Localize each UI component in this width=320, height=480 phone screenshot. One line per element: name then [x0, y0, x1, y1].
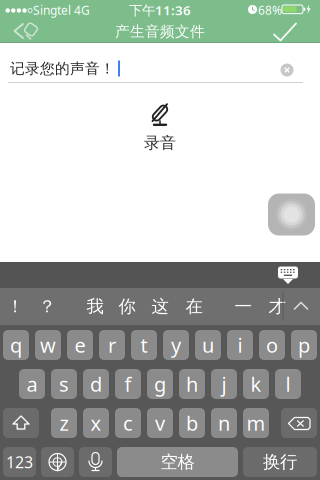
staticText: ！: [6, 296, 23, 317]
staticText: 4G: [74, 2, 90, 18]
button[interactable]: 收起键盘: [271, 263, 305, 287]
staticText: 123: [6, 451, 33, 473]
staticText: w: [40, 332, 56, 358]
button[interactable]: i: [227, 330, 253, 360]
staticText: Singtel: [33, 2, 71, 18]
staticText: o: [266, 332, 278, 358]
button[interactable]: ？: [32, 291, 62, 321]
staticText: 一: [234, 296, 251, 317]
button[interactable]: 空格: [117, 447, 238, 477]
staticText: a: [26, 371, 37, 397]
button[interactable]: n: [211, 408, 237, 438]
button[interactable]: 录音: [130, 98, 190, 150]
button[interactable]: y: [163, 330, 189, 360]
button[interactable]: u: [195, 330, 221, 360]
button[interactable]: o: [259, 330, 285, 360]
staticText: 空格: [160, 451, 194, 473]
button[interactable]: ！: [0, 291, 30, 321]
button[interactable]: b: [179, 408, 205, 438]
staticText: t: [140, 332, 147, 358]
staticText: b: [186, 410, 198, 436]
button[interactable]: 辅助触控: [268, 193, 315, 235]
button[interactable]: 返回: [4, 17, 48, 47]
button[interactable]: 一: [228, 291, 258, 321]
button[interactable]: 在: [179, 291, 209, 321]
staticText: 在: [185, 296, 202, 317]
staticText: n: [218, 410, 230, 436]
button[interactable]: d: [83, 369, 109, 399]
staticText: e: [74, 332, 85, 358]
staticText: d: [90, 371, 102, 397]
button[interactable]: 清除文本: [280, 63, 293, 76]
staticText: 你: [118, 296, 135, 317]
button[interactable]: s: [51, 369, 77, 399]
button[interactable]: c: [115, 408, 141, 438]
staticText: 这: [151, 296, 168, 317]
button[interactable]: p: [291, 330, 317, 360]
button[interactable]: 123: [3, 447, 36, 477]
button[interactable]: 展开候选词: [291, 299, 310, 313]
staticText: f: [124, 371, 131, 397]
staticText: 录音: [144, 133, 176, 153]
button[interactable]: t: [131, 330, 157, 360]
button[interactable]: 听写: [79, 447, 112, 477]
staticText: 下午11:36: [129, 1, 191, 19]
button[interactable]: g: [147, 369, 173, 399]
button[interactable]: w: [35, 330, 61, 360]
button[interactable]: r: [99, 330, 125, 360]
staticText: u: [202, 332, 214, 358]
button[interactable]: 切换输入法: [41, 447, 74, 477]
button[interactable]: x: [83, 408, 109, 438]
staticText: h: [186, 371, 198, 397]
button[interactable]: q: [3, 330, 29, 360]
button[interactable]: j: [211, 369, 237, 399]
button[interactable]: Shift: [3, 408, 39, 438]
button[interactable]: 才: [262, 291, 292, 321]
button[interactable]: m: [243, 408, 269, 438]
staticText: i: [237, 332, 242, 358]
staticText: 换行: [263, 451, 297, 473]
staticText: 我: [86, 296, 103, 317]
button[interactable]: e: [67, 330, 93, 360]
staticText: 才: [268, 296, 285, 317]
button[interactable]: f: [115, 369, 141, 399]
staticText: z: [59, 410, 68, 436]
staticText: p: [298, 332, 310, 358]
staticText: 记录您的声音！: [10, 59, 115, 77]
button[interactable]: 这: [145, 291, 175, 321]
staticText: j: [221, 371, 226, 397]
staticText: 68%: [258, 2, 282, 18]
staticText: c: [123, 410, 133, 436]
button[interactable]: a: [19, 369, 45, 399]
staticText: ？: [38, 296, 55, 317]
button[interactable]: 删除: [281, 408, 317, 438]
staticText: 产生音频文件: [115, 22, 205, 40]
staticText: x: [90, 410, 101, 436]
button[interactable]: l: [275, 369, 301, 399]
button[interactable]: 换行: [243, 447, 317, 477]
staticText: l: [285, 371, 290, 397]
button[interactable]: z: [51, 408, 77, 438]
button[interactable]: k: [243, 369, 269, 399]
staticText: q: [10, 332, 22, 358]
staticText: r: [108, 332, 116, 358]
button[interactable]: v: [147, 408, 173, 438]
staticText: k: [250, 371, 261, 397]
staticText: m: [246, 410, 265, 436]
staticText: y: [171, 332, 181, 358]
staticText: g: [154, 371, 166, 397]
button[interactable]: 我: [80, 291, 110, 321]
button[interactable]: h: [179, 369, 205, 399]
button[interactable]: 确认: [263, 17, 307, 47]
staticText: v: [155, 410, 165, 436]
button[interactable]: 你: [112, 291, 142, 321]
staticText: s: [59, 371, 69, 397]
